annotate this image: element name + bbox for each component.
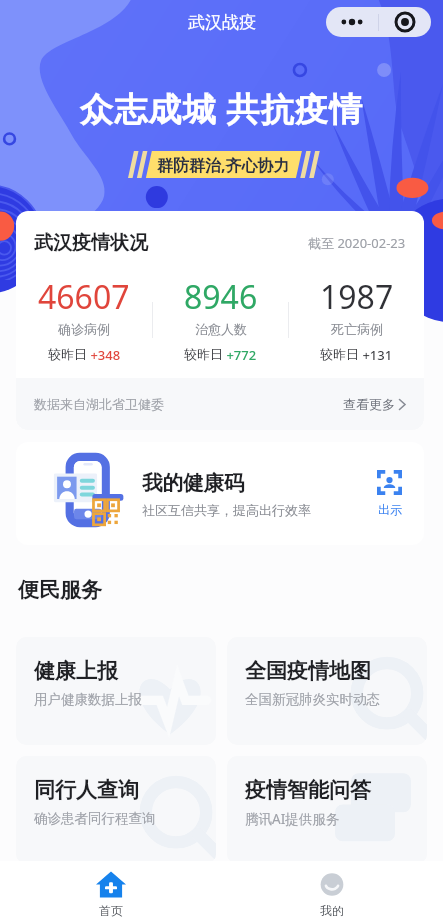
staticText: 1987: [320, 275, 394, 319]
staticText: 便民服务: [18, 577, 102, 603]
staticText: 群防群治,齐心协力: [157, 154, 290, 176]
button[interactable]: 我的健康码: [16, 442, 424, 545]
staticText: 8946: [184, 275, 258, 319]
staticText: 武汉战疫: [188, 12, 256, 33]
staticText: 腾讯AI提供服务: [245, 810, 340, 828]
staticText: 首页: [99, 903, 123, 918]
staticText: 出示: [378, 502, 402, 517]
staticText: 疫情智能问答: [245, 777, 371, 803]
button[interactable]: 全国疫情地图: [227, 637, 427, 745]
button[interactable]: 疫情智能问答: [227, 756, 427, 864]
staticText: 用户健康数据上报: [34, 691, 142, 708]
staticText: 截至 2020-02-23: [308, 234, 406, 252]
staticText: 众志成城 共抗疫情: [80, 86, 364, 131]
button[interactable]: 我的: [291, 868, 373, 921]
button[interactable]: 数据来自湖北省卫健委: [16, 378, 424, 430]
staticText: +131: [359, 346, 393, 364]
button[interactable]: 健康上报: [16, 637, 216, 745]
staticText: 较昨日: [184, 346, 223, 362]
staticText: +772: [223, 346, 257, 364]
other: 出示健康码: [377, 470, 402, 495]
staticText: 46607: [38, 275, 130, 319]
button[interactable]: 首页: [70, 868, 152, 921]
staticText: 武汉疫情状况: [34, 231, 148, 255]
button[interactable]: 同行人查询: [16, 756, 216, 864]
staticText: 查看更多: [343, 396, 395, 412]
staticText: 死亡病例: [331, 321, 383, 337]
staticText: 较昨日: [320, 346, 359, 362]
staticText: 健康上报: [34, 658, 118, 684]
staticText: 确诊患者同行程查询: [34, 810, 156, 827]
staticText: 治愈人数: [195, 321, 247, 337]
staticText: 我的健康码: [142, 470, 245, 496]
button[interactable]: 菜单: [326, 7, 431, 37]
staticText: 社区互信共享，提高出行效率: [142, 502, 311, 518]
button[interactable]: 出示健康码: [373, 466, 406, 521]
staticText: 较昨日: [48, 346, 87, 362]
staticText: 全国新冠肺炎实时动态: [245, 691, 380, 708]
staticText: 我的: [320, 903, 344, 918]
staticText: +348: [87, 346, 121, 364]
staticText: 全国疫情地图: [245, 658, 371, 684]
staticText: 同行人查询: [34, 777, 139, 803]
staticText: 数据来自湖北省卫健委: [34, 396, 164, 412]
staticText: 确诊病例: [58, 321, 110, 337]
